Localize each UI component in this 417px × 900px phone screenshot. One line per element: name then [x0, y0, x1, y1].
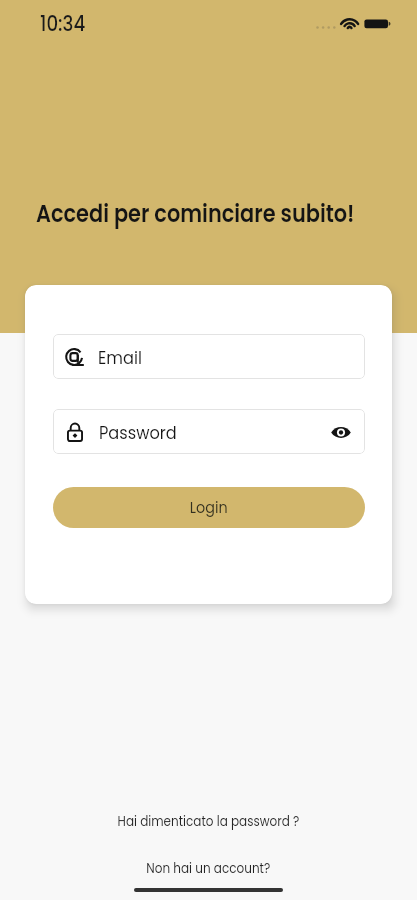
button[interactable]: Show password — [328, 419, 354, 445]
staticText: Password — [99, 419, 177, 445]
button[interactable]: Password — [53, 409, 365, 454]
button[interactable]: Login — [53, 487, 365, 528]
button[interactable]: Email — [53, 334, 365, 379]
staticText: Hai dimenticato la password ? — [118, 812, 299, 831]
staticText: Email — [98, 344, 142, 370]
staticText: Accedi per cominciare subito! — [36, 197, 355, 231]
staticText: Login — [190, 496, 228, 519]
staticText: Non hai un account? — [146, 859, 271, 878]
button[interactable]: Non hai un account? — [127, 855, 290, 882]
staticText: 10:34 — [40, 9, 86, 38]
button[interactable]: Hai dimenticato la password ? — [94, 808, 323, 835]
